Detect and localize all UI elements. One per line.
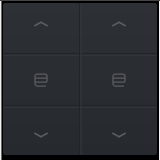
other: Blind 2 stop bbox=[111, 71, 127, 89]
button[interactable]: Blind 2 up bbox=[81, 3, 157, 53]
other: Blind 2 down bbox=[110, 130, 128, 140]
other: Blind 1 up bbox=[32, 19, 50, 29]
other: Blind 1 down bbox=[32, 130, 50, 140]
button[interactable]: Blind 1 down bbox=[3, 107, 79, 155]
other: Blind 1 stop bbox=[33, 71, 49, 89]
button[interactable]: Blind 2 stop bbox=[81, 55, 157, 105]
button[interactable]: Blind 1 stop bbox=[3, 55, 79, 105]
other: Blind 2 up bbox=[110, 19, 128, 29]
button[interactable]: Blind 2 down bbox=[81, 107, 157, 155]
button[interactable]: Blind 1 up bbox=[3, 3, 79, 53]
